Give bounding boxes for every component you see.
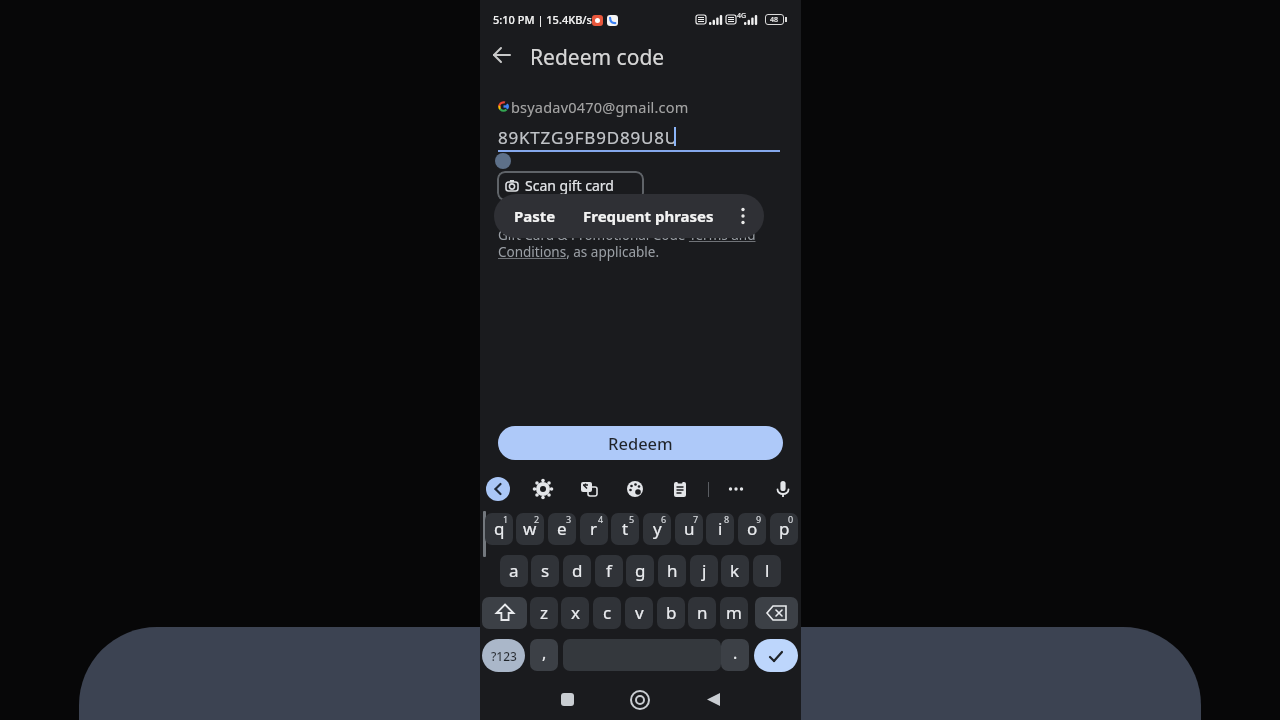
button[interactable] <box>530 476 556 502</box>
button[interactable]: . <box>721 639 749 671</box>
staticText: Redeem code <box>530 43 665 72</box>
staticText: m <box>726 601 742 624</box>
button[interactable]: i <box>706 513 734 545</box>
staticText: 1 <box>503 513 509 525</box>
staticText: 5:10 PM | 15.4KB/s <box>493 12 592 27</box>
staticText: e <box>557 517 567 540</box>
staticText: 4G <box>737 11 747 21</box>
button[interactable] <box>754 639 798 672</box>
staticText: 5 <box>629 513 635 525</box>
staticText: c <box>603 601 612 624</box>
button[interactable]: j <box>690 555 718 587</box>
staticText: h <box>667 559 678 582</box>
staticText: t <box>622 517 629 540</box>
staticText: a <box>509 559 519 582</box>
staticText: p <box>779 517 790 540</box>
staticText: r <box>590 517 598 540</box>
button[interactable]: r <box>580 513 608 545</box>
staticText: 48 <box>770 15 779 25</box>
button[interactable]: c <box>593 597 621 629</box>
staticText: . <box>733 642 738 664</box>
button[interactable]: , <box>530 639 558 671</box>
button[interactable]: k <box>721 555 749 587</box>
staticText: bsyadav0470@gmail.com <box>511 97 689 117</box>
staticText: q <box>494 517 505 540</box>
button[interactable] <box>770 476 796 502</box>
button[interactable]: m <box>720 597 748 629</box>
button[interactable]: Frequent phrases <box>583 206 714 226</box>
button[interactable]: n <box>688 597 716 629</box>
button[interactable]: p <box>770 513 798 545</box>
button[interactable]: q <box>485 513 513 545</box>
button[interactable] <box>707 693 720 706</box>
staticText: 8 <box>724 513 730 525</box>
staticText: n <box>697 601 708 624</box>
staticText: s <box>541 559 550 582</box>
staticText: 6 <box>661 513 667 525</box>
staticText: b <box>666 601 677 624</box>
button[interactable] <box>622 476 648 502</box>
button[interactable]: s <box>531 555 559 587</box>
button[interactable] <box>482 597 527 629</box>
staticText: k <box>730 559 740 582</box>
staticText: x <box>571 601 580 624</box>
button[interactable]: e <box>548 513 576 545</box>
button[interactable]: b <box>657 597 685 629</box>
button[interactable]: l <box>753 555 781 587</box>
staticText: 7 <box>693 513 699 525</box>
button[interactable] <box>486 477 510 501</box>
staticText: Conditions, as applicable. <box>498 243 660 261</box>
button[interactable]: g <box>626 555 654 587</box>
button[interactable] <box>755 597 798 629</box>
staticText: Scan gift card <box>525 176 614 195</box>
staticText: d <box>572 559 583 582</box>
staticText: ?123 <box>491 648 517 664</box>
button[interactable] <box>561 693 574 706</box>
button[interactable]: d <box>563 555 591 587</box>
button[interactable]: Scan gift card <box>497 171 644 201</box>
button[interactable]: y <box>643 513 671 545</box>
button[interactable]: ?123 <box>482 639 525 672</box>
staticText: 2 <box>534 513 540 525</box>
button[interactable]: t <box>611 513 639 545</box>
staticText: f <box>606 559 612 582</box>
button[interactable] <box>730 203 756 229</box>
staticText: Gift Card & Promotional Code Terms and <box>498 226 756 244</box>
staticText: 9 <box>756 513 762 525</box>
button[interactable] <box>630 690 650 710</box>
staticText: 3 <box>566 513 572 525</box>
button[interactable] <box>723 476 749 502</box>
staticText: 0 <box>788 513 794 525</box>
button[interactable]: x <box>561 597 589 629</box>
staticText: l <box>765 559 770 582</box>
staticText: , <box>542 642 547 664</box>
staticText: i <box>718 517 723 540</box>
staticText: z <box>540 601 548 624</box>
button[interactable]: f <box>595 555 623 587</box>
button[interactable]: a <box>500 555 528 587</box>
staticText: v <box>635 601 644 624</box>
button[interactable] <box>488 41 516 69</box>
staticText: Redeem <box>608 432 673 454</box>
button[interactable]: w <box>516 513 544 545</box>
button[interactable]: z <box>530 597 558 629</box>
button[interactable]: Redeem <box>498 426 783 460</box>
staticText: j <box>702 559 707 582</box>
button[interactable]: Paste <box>514 206 556 226</box>
staticText: o <box>747 517 758 540</box>
staticText: 89KTZG9FB9D89U8U <box>498 126 678 149</box>
button[interactable]: v <box>625 597 653 629</box>
staticText: 4 <box>598 513 604 525</box>
staticText: g <box>635 559 646 582</box>
button[interactable] <box>576 476 602 502</box>
button[interactable]: u <box>675 513 703 545</box>
button[interactable]: h <box>658 555 686 587</box>
staticText: y <box>653 517 662 540</box>
staticText: u <box>684 517 695 540</box>
button[interactable] <box>667 476 693 502</box>
staticText: w <box>523 517 537 540</box>
button[interactable]: o <box>738 513 766 545</box>
